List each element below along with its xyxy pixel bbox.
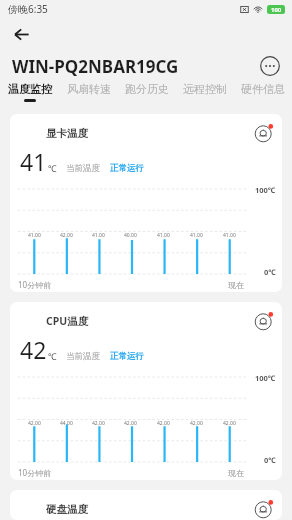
staticText: 跑分历史 — [125, 82, 169, 96]
staticText: 44.00 — [60, 420, 73, 427]
staticText: 10分钟前 — [18, 279, 52, 290]
staticText: 42.00 — [157, 420, 170, 427]
staticText: ℃ — [48, 350, 57, 362]
staticText: 10分钟前 — [18, 467, 52, 478]
staticText: 硬盘温度 — [46, 503, 88, 516]
staticText: ℃ — [48, 162, 57, 174]
staticText: 41 — [20, 146, 47, 177]
staticText: 100 — [271, 6, 282, 14]
staticText: 41.00 — [190, 232, 203, 239]
button[interactable]: Back — [6, 19, 36, 49]
staticText: 41.00 — [223, 232, 236, 239]
button[interactable]: 温度监控 — [0, 82, 59, 102]
staticText: 硬件信息 — [241, 82, 285, 96]
staticText: 42.00 — [92, 420, 105, 427]
staticText: 42.00 — [60, 232, 73, 239]
staticText: 傍晚6:35 — [8, 2, 48, 16]
staticText: 当前温度 — [66, 351, 100, 362]
staticText: 41.00 — [157, 232, 170, 239]
button[interactable]: 跑分历史 — [118, 82, 176, 99]
button[interactable]: CPU温度 — [10, 302, 282, 480]
staticText: 0℃ — [264, 267, 276, 277]
staticText: 远程控制 — [183, 82, 227, 96]
staticText: 现在 — [228, 468, 244, 478]
staticText: 显卡温度 — [46, 127, 88, 140]
button[interactable]: 硬件信息 — [234, 82, 292, 99]
button[interactable]: Alert settings — [254, 123, 274, 143]
staticText: 风扇转速 — [67, 82, 111, 96]
staticText: 当前温度 — [66, 163, 100, 174]
staticText: 42.00 — [190, 420, 203, 427]
staticText: CPU温度 — [46, 314, 89, 328]
button[interactable]: 远程控制 — [176, 82, 234, 99]
staticText: 0℃ — [264, 455, 276, 465]
button[interactable]: Alert settings — [254, 499, 274, 519]
button[interactable]: More options — [258, 54, 282, 78]
staticText: 正常运行 — [110, 351, 144, 362]
button[interactable]: 显卡温度 — [10, 114, 282, 292]
staticText: 现在 — [228, 280, 244, 290]
staticText: 100℃ — [255, 185, 276, 195]
staticText: 42 — [20, 334, 47, 365]
staticText: 温度监控 — [8, 82, 52, 96]
staticText: 41.00 — [28, 232, 41, 239]
staticText: 41.00 — [92, 232, 105, 239]
staticText: WIN-PQ2NBAR19CG — [12, 55, 179, 78]
staticText: 42.00 — [223, 420, 236, 427]
button[interactable]: 风扇转速 — [59, 82, 118, 99]
staticText: 100℃ — [255, 373, 276, 383]
button[interactable]: Alert settings — [254, 311, 274, 331]
staticText: 40.00 — [124, 232, 137, 239]
staticText: 42.00 — [124, 420, 137, 427]
staticText: 正常运行 — [110, 163, 144, 174]
button[interactable]: 硬盘温度 — [10, 490, 282, 520]
staticText: 42.00 — [28, 420, 41, 427]
